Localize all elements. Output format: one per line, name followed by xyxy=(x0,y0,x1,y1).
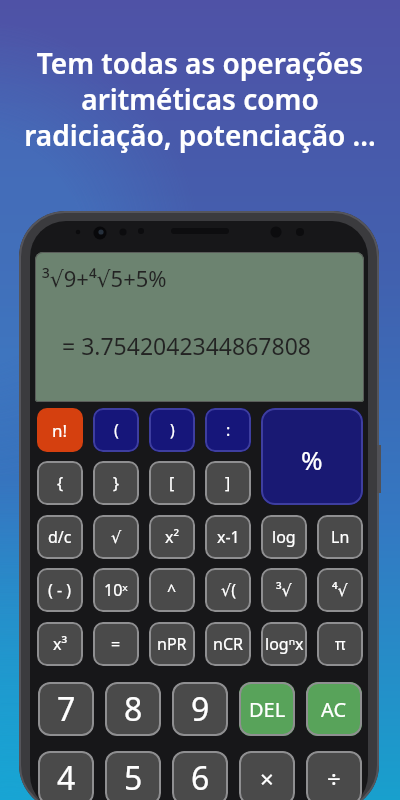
button[interactable]: ] xyxy=(205,461,251,505)
button[interactable]: { xyxy=(37,461,83,505)
button[interactable]: 8 xyxy=(105,682,161,736)
staticText: d/c xyxy=(48,526,72,548)
staticText: x² xyxy=(165,526,180,548)
staticText: ] xyxy=(225,472,231,494)
button[interactable]: × xyxy=(239,751,295,800)
button[interactable]: √( xyxy=(205,568,251,612)
staticText: √( xyxy=(221,579,236,601)
button[interactable]: x² xyxy=(149,515,195,559)
button[interactable]: = xyxy=(93,622,139,666)
button[interactable]: x³ xyxy=(37,622,83,666)
staticText: logⁿx xyxy=(265,633,304,655)
staticText: % xyxy=(301,442,323,477)
staticText: 9 xyxy=(191,687,210,731)
staticText: 7 xyxy=(57,687,76,731)
button[interactable]: nCR xyxy=(205,622,251,666)
button[interactable]: π xyxy=(317,622,363,666)
button[interactable]: ( xyxy=(93,408,139,452)
staticText: √ xyxy=(111,528,122,547)
staticText: x³ xyxy=(53,633,68,655)
button[interactable]: : xyxy=(205,408,251,452)
button[interactable]: [ xyxy=(149,461,195,505)
staticText: nPR xyxy=(157,633,187,655)
button[interactable]: log xyxy=(261,515,307,559)
staticText: × xyxy=(260,762,274,795)
staticText: x-1 xyxy=(217,526,240,548)
button[interactable]: ÷ xyxy=(306,751,362,800)
button[interactable]: AC xyxy=(306,682,362,736)
staticText: Ln xyxy=(331,526,350,548)
staticText: n! xyxy=(52,419,68,442)
button[interactable]: % xyxy=(261,408,363,505)
button[interactable]: √ xyxy=(93,515,139,559)
staticText: { xyxy=(57,472,64,494)
staticText: 6 xyxy=(191,756,210,800)
staticText: ( - ) xyxy=(48,579,72,601)
staticText: ⁴√ xyxy=(332,579,348,601)
staticText: nCR xyxy=(213,633,243,655)
staticText: : xyxy=(226,419,231,441)
staticText: 10ˣ xyxy=(104,579,128,601)
staticText: 4 xyxy=(57,756,76,800)
button[interactable]: 7 xyxy=(38,682,94,736)
staticText: ³√ xyxy=(276,579,292,601)
button[interactable]: 4 xyxy=(38,751,94,800)
staticText: Tem todas as operações aritméticas como … xyxy=(0,44,400,154)
staticText: log xyxy=(272,526,296,548)
staticText: = 3.7542042344867808 xyxy=(62,330,311,361)
staticText: ) xyxy=(170,419,175,441)
staticText: [ xyxy=(169,472,175,494)
button[interactable]: d/c xyxy=(37,515,83,559)
button[interactable]: logⁿx xyxy=(261,622,307,666)
button[interactable]: x-1 xyxy=(205,515,251,559)
button[interactable]: 10ˣ xyxy=(93,568,139,612)
staticText: π xyxy=(335,633,346,655)
button[interactable]: ^ xyxy=(149,568,195,612)
button[interactable]: ) xyxy=(149,408,195,452)
staticText: 5 xyxy=(124,756,143,800)
staticText: } xyxy=(113,472,120,494)
button[interactable]: 6 xyxy=(172,751,228,800)
staticText: = xyxy=(111,633,121,655)
button[interactable]: 5 xyxy=(105,751,161,800)
button[interactable]: n! xyxy=(37,408,83,452)
staticText: DEL xyxy=(249,696,286,723)
button[interactable]: nPR xyxy=(149,622,195,666)
staticText: ^ xyxy=(167,579,177,601)
button[interactable]: } xyxy=(93,461,139,505)
button[interactable]: ⁴√ xyxy=(317,568,363,612)
button[interactable]: ( - ) xyxy=(37,568,83,612)
staticText: ³√9+⁴√5+5% xyxy=(42,263,167,293)
staticText: ÷ xyxy=(327,762,341,795)
button[interactable]: 9 xyxy=(172,682,228,736)
button[interactable]: Ln xyxy=(317,515,363,559)
button[interactable]: ³√ xyxy=(261,568,307,612)
staticText: ( xyxy=(114,419,119,441)
staticText: AC xyxy=(321,696,347,723)
staticText: 8 xyxy=(124,687,143,731)
button[interactable]: DEL xyxy=(239,682,295,736)
